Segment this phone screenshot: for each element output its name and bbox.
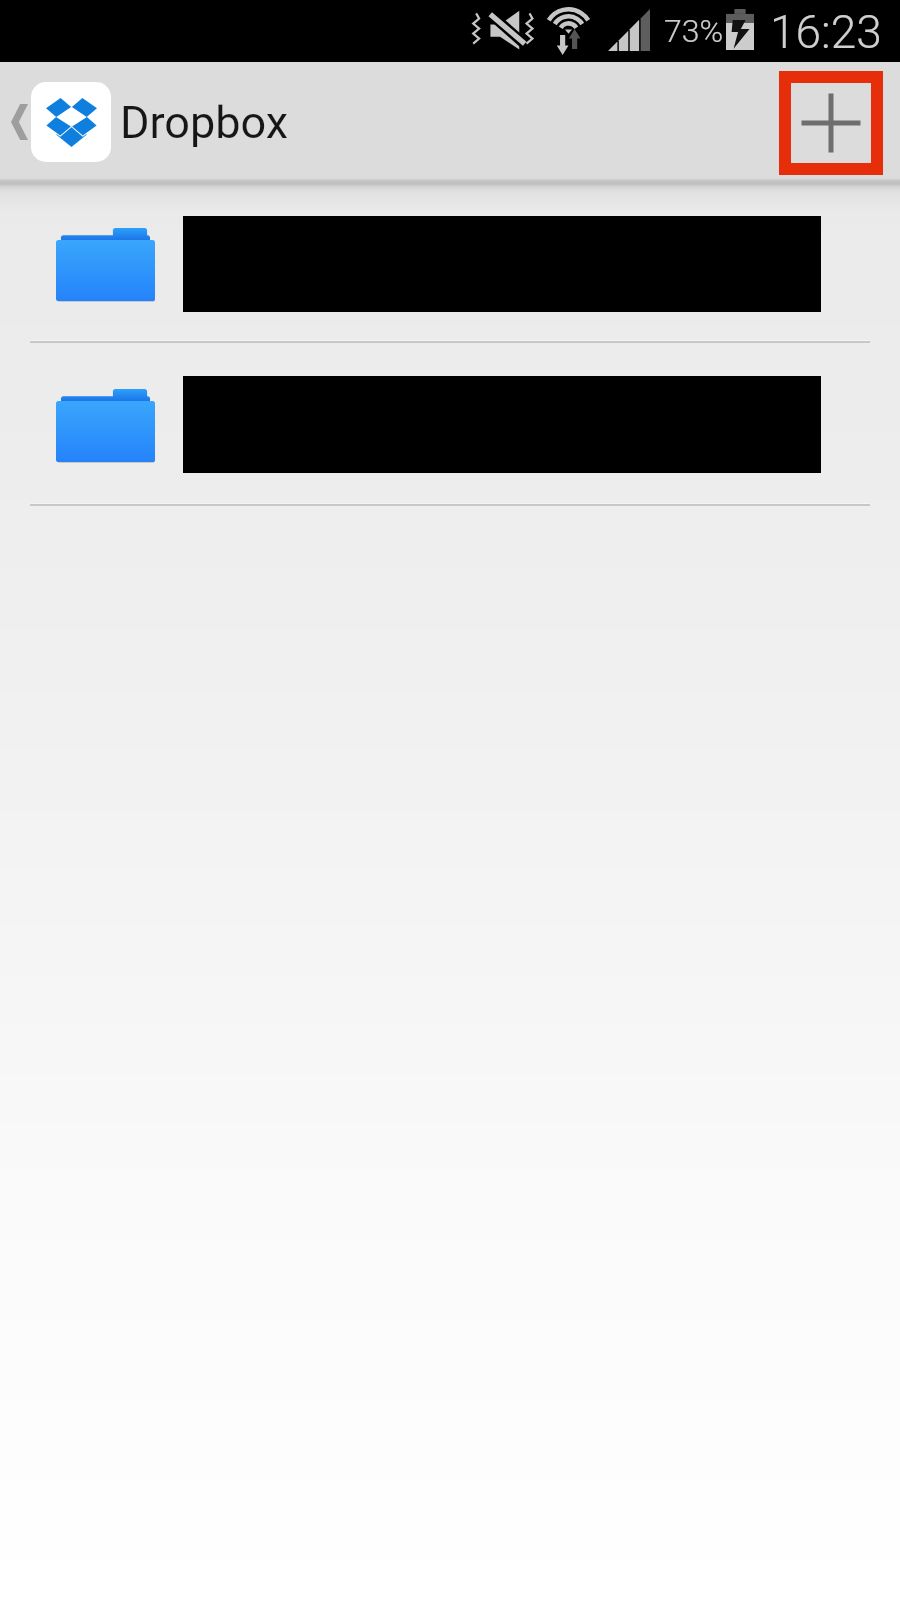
staticText: Dropbox [120, 96, 289, 149]
button[interactable]: Add [779, 71, 883, 175]
staticText: 73% [664, 12, 724, 50]
button[interactable] [0, 343, 900, 506]
button[interactable]: Navigate up [0, 64, 303, 180]
button[interactable] [0, 178, 900, 343]
staticText: 16:23 [770, 5, 882, 59]
